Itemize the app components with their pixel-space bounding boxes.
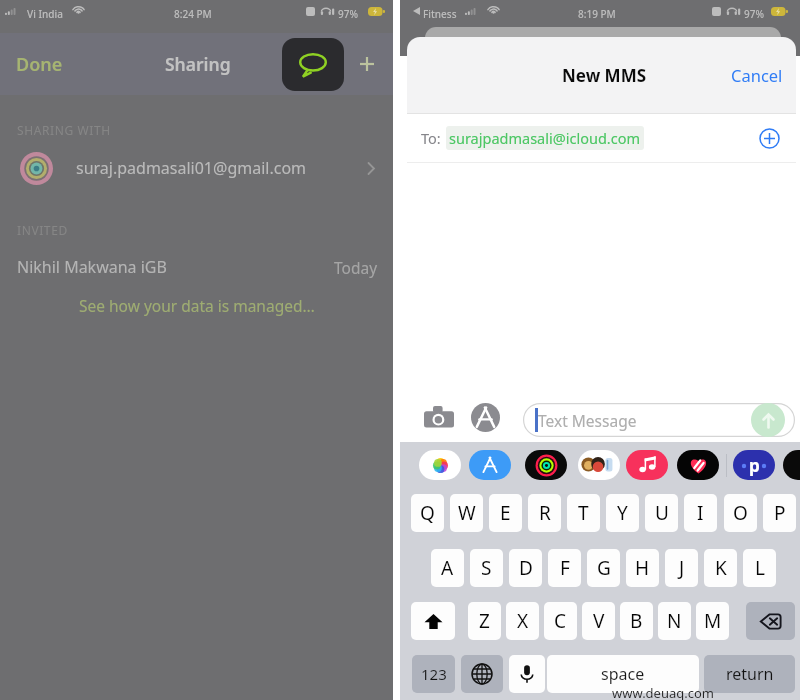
button[interactable]: N [658, 602, 691, 640]
button[interactable] [578, 450, 620, 480]
staticText: 8:19 PM [578, 7, 616, 21]
button[interactable] [469, 450, 511, 480]
staticText: N [667, 608, 682, 634]
button[interactable]: Send [751, 403, 785, 437]
staticText: Sharing [165, 52, 231, 76]
button[interactable] [419, 450, 461, 480]
staticText: S [481, 555, 492, 581]
button[interactable]: p [733, 450, 775, 480]
staticText: L [755, 555, 765, 581]
staticText: I [697, 500, 704, 526]
button[interactable]: See how your data is managed… [79, 295, 315, 316]
button[interactable]: K [704, 549, 737, 587]
button[interactable]: Done [16, 52, 63, 77]
staticText: 97% [744, 7, 764, 21]
button[interactable] [626, 450, 668, 480]
button[interactable]: P [763, 494, 796, 532]
staticText: R [539, 500, 551, 526]
button[interactable]: Cancel [731, 64, 783, 86]
staticText: B [630, 608, 643, 634]
button[interactable]: Y [606, 494, 639, 532]
button[interactable]: Nikhil Makwana iGB [0, 254, 393, 280]
staticText: 8:24 PM [174, 7, 212, 21]
button[interactable]: W [450, 494, 483, 532]
staticText: P [774, 500, 786, 526]
staticText: Cancel [731, 64, 783, 86]
staticText: 97% [338, 7, 358, 21]
button[interactable]: V [582, 602, 615, 640]
button[interactable]: L [743, 549, 776, 587]
staticText: M [704, 608, 722, 634]
staticText: X [517, 608, 529, 634]
button[interactable]: Dictate [509, 655, 545, 693]
button[interactable]: Message [282, 38, 344, 91]
staticText: Z [479, 608, 490, 634]
button[interactable]: C [544, 602, 577, 640]
staticText: Nikhil Makwana iGB [17, 256, 167, 278]
staticText: D [519, 555, 533, 581]
staticText: C [554, 608, 567, 634]
button[interactable]: E [489, 494, 522, 532]
button[interactable]: T [567, 494, 600, 532]
staticText: G [597, 555, 611, 581]
button[interactable] [677, 450, 719, 480]
button[interactable]: Backspace [746, 602, 795, 640]
staticText: J [679, 555, 685, 581]
staticText: To: [421, 128, 441, 148]
button[interactable]: App Store [466, 401, 504, 433]
button[interactable]: Z [468, 602, 501, 640]
staticText: H [635, 555, 650, 581]
staticText: suraj.padmasali01@gmail.com [76, 157, 307, 179]
staticText: Q [420, 500, 435, 526]
button[interactable]: suraj.padmasali01@gmail.com [0, 148, 393, 188]
staticText: O [733, 500, 748, 526]
button[interactable]: Add contact [756, 125, 782, 151]
button[interactable]: G [587, 549, 620, 587]
button[interactable]: A [431, 549, 464, 587]
button[interactable]: space [547, 655, 699, 693]
button[interactable]: X [506, 602, 539, 640]
button[interactable]: U [645, 494, 678, 532]
button[interactable]: Camera [420, 402, 458, 432]
button[interactable]: I [684, 494, 717, 532]
button[interactable]: J [665, 549, 698, 587]
button[interactable]: R [528, 494, 561, 532]
button[interactable] [783, 450, 800, 480]
button[interactable]: Language [461, 655, 503, 693]
staticText: www.deuaq.com [612, 684, 715, 700]
staticText: A [441, 555, 454, 581]
staticText: return [726, 663, 774, 685]
button[interactable]: Numbers [412, 655, 455, 693]
staticText: New MMS [562, 64, 647, 87]
staticText: See how your data is managed… [79, 295, 315, 316]
staticText: space [601, 663, 645, 685]
staticText: surajpadmasali@icloud.com [449, 128, 641, 148]
staticText: K [715, 555, 727, 581]
button[interactable]: B [620, 602, 653, 640]
button[interactable]: M [696, 602, 729, 640]
button[interactable]: Add [352, 49, 382, 79]
button[interactable]: D [509, 549, 542, 587]
staticText: W [458, 500, 476, 526]
button[interactable]: F [548, 549, 581, 587]
button[interactable] [525, 450, 567, 480]
staticText: Fitness [423, 7, 457, 21]
button[interactable]: S [470, 549, 503, 587]
staticText: V [593, 608, 605, 634]
button[interactable]: O [724, 494, 757, 532]
button[interactable] [523, 403, 795, 437]
staticText: Vi India [27, 7, 63, 21]
button[interactable]: Q [411, 494, 444, 532]
button[interactable]: Shift [411, 602, 455, 640]
staticText: U [655, 500, 669, 526]
staticText: INVITED [17, 222, 68, 238]
staticText: 123 [421, 664, 447, 684]
staticText: p [749, 454, 760, 477]
staticText: Done [16, 52, 63, 77]
button[interactable]: return [704, 655, 795, 693]
staticText: Text Message [538, 410, 637, 431]
button[interactable]: H [626, 549, 659, 587]
staticText: SHARING WITH [17, 122, 111, 138]
staticText: Y [617, 500, 628, 526]
staticText: Today [334, 257, 378, 278]
